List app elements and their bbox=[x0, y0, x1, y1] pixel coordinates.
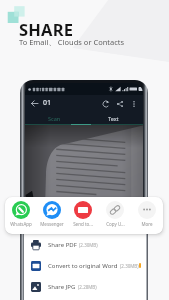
button[interactable]: Send to... bbox=[67, 197, 99, 234]
button[interactable]: Rotate bbox=[100, 98, 111, 109]
staticText: (2.30MB) bbox=[79, 242, 98, 248]
button[interactable]: More options bbox=[128, 98, 139, 109]
staticText: To Email、 Clouds or Contacts bbox=[19, 37, 125, 47]
button[interactable]: Share JPG bbox=[24, 276, 146, 297]
button[interactable]: Messenger bbox=[36, 197, 67, 234]
staticText: Convert to original Word bbox=[48, 262, 118, 270]
button[interactable]: More bbox=[131, 197, 163, 234]
button[interactable]: Text bbox=[84, 111, 143, 125]
staticText: 01 bbox=[43, 98, 52, 108]
staticText: Text bbox=[108, 115, 119, 122]
button[interactable]: Scan bbox=[25, 111, 84, 125]
button[interactable]: Copy U... bbox=[99, 197, 131, 234]
staticText: Copy U... bbox=[106, 221, 125, 227]
staticText: (2.30MB) bbox=[120, 263, 139, 269]
staticText: SHARE bbox=[19, 18, 74, 40]
staticText: Messenger bbox=[40, 221, 64, 227]
staticText: WhatsApp bbox=[10, 221, 32, 227]
staticText: Scan bbox=[48, 115, 61, 122]
staticText: Share JPG bbox=[48, 283, 76, 291]
button[interactable]: Share bbox=[114, 98, 125, 109]
button[interactable]: Share PDF bbox=[24, 234, 146, 255]
staticText: Send to... bbox=[73, 221, 93, 227]
staticText: (2.28MB) bbox=[78, 284, 97, 290]
button[interactable]: WhatsApp bbox=[5, 197, 36, 234]
staticText: More bbox=[141, 221, 153, 227]
staticText: Share PDF bbox=[48, 241, 77, 249]
button[interactable]: Back bbox=[29, 98, 40, 109]
button[interactable]: Convert to original Word bbox=[24, 255, 146, 276]
